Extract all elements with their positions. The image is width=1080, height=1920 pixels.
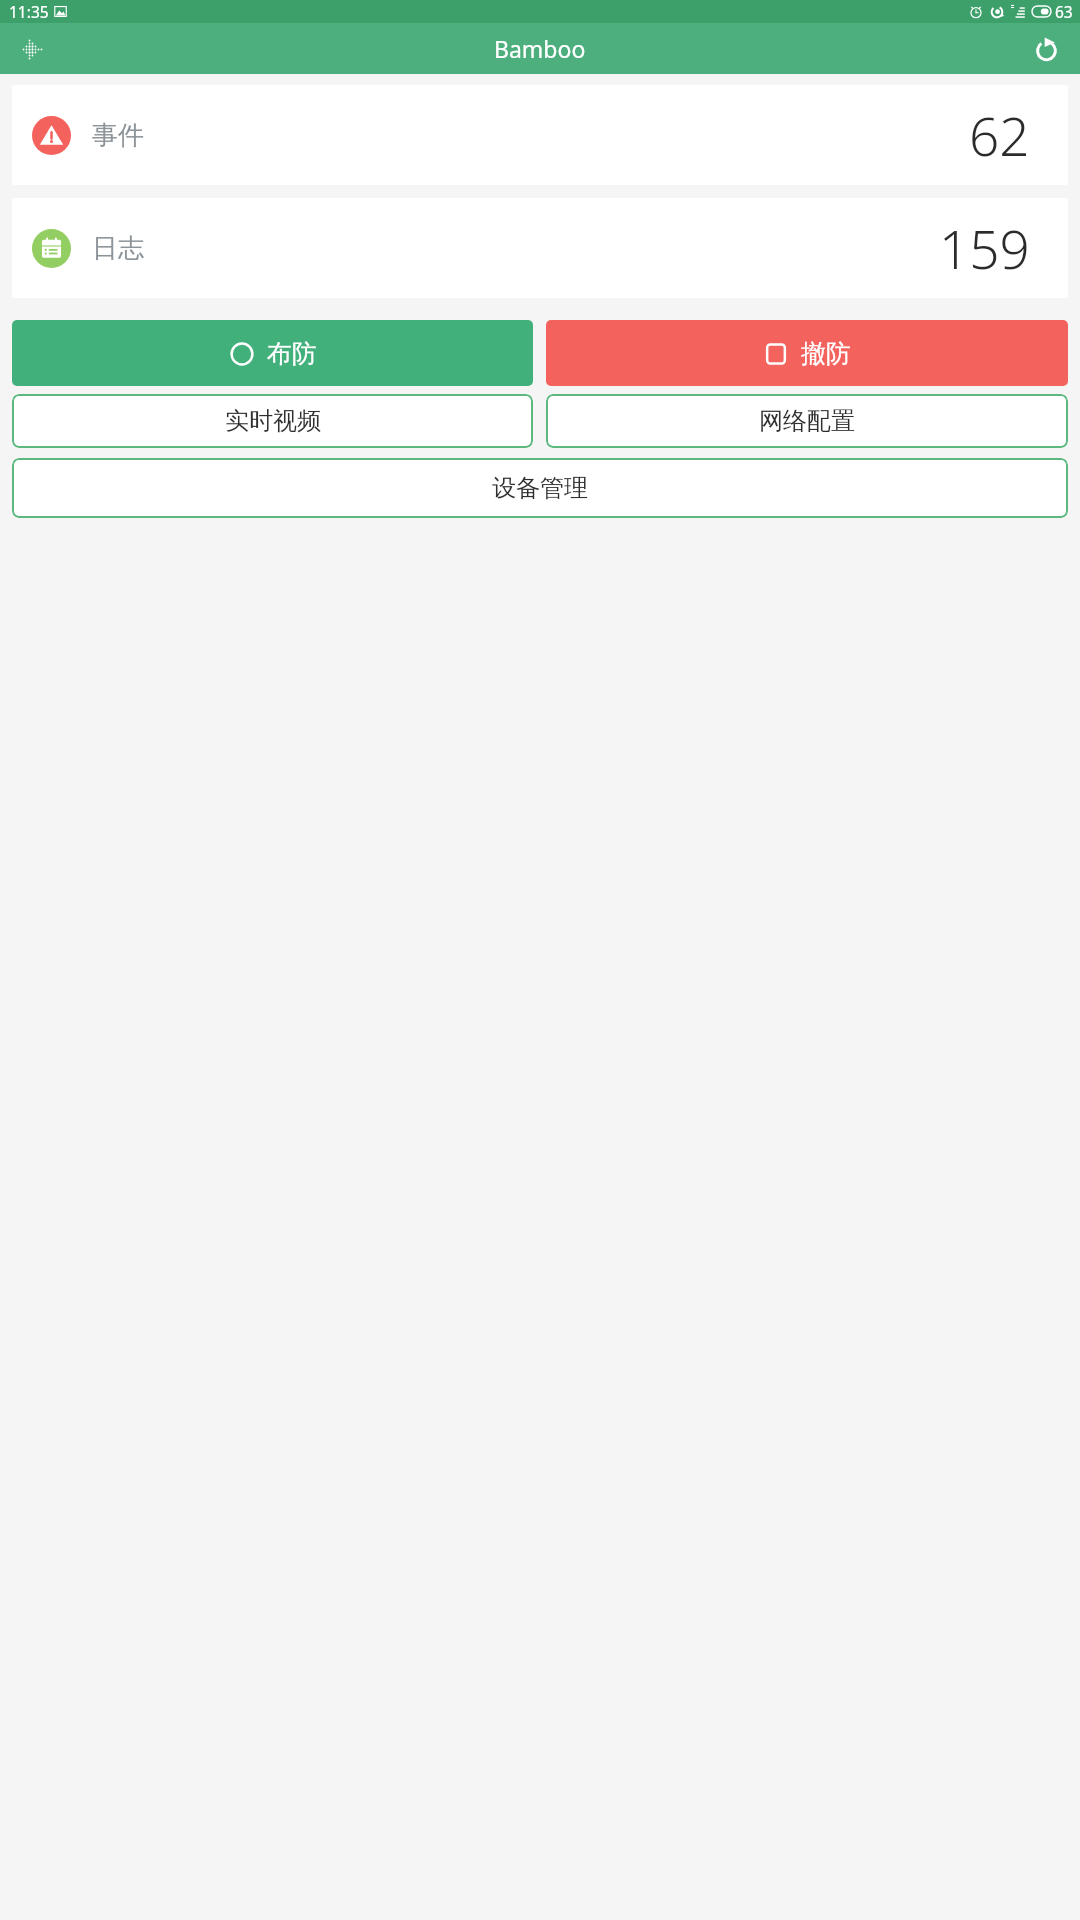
button[interactable]: Menu <box>8 25 56 73</box>
button[interactable]: 实时视频 <box>12 394 533 448</box>
staticText: 事件 <box>92 119 144 152</box>
staticText: 撤防 <box>801 338 851 369</box>
staticText: 159 <box>939 212 1030 284</box>
staticText: 63 <box>1055 1 1073 22</box>
button[interactable]: 布防 <box>12 320 533 386</box>
staticText: 设备管理 <box>492 473 588 503</box>
staticText: 网络配置 <box>759 406 855 436</box>
button[interactable]: 事件 <box>12 85 1068 185</box>
button[interactable]: 撤防 <box>546 320 1068 386</box>
staticText: 62 <box>969 99 1030 171</box>
button[interactable]: 网络配置 <box>546 394 1068 448</box>
button[interactable]: 日志 <box>12 198 1068 298</box>
button[interactable]: Refresh <box>1022 25 1070 73</box>
staticText: Bamboo <box>494 33 586 64</box>
staticText: 实时视频 <box>225 406 321 436</box>
staticText: 日志 <box>92 232 144 265</box>
button[interactable]: 设备管理 <box>12 458 1068 518</box>
staticText: 布防 <box>267 338 317 369</box>
staticText: 11:35 <box>9 1 49 22</box>
